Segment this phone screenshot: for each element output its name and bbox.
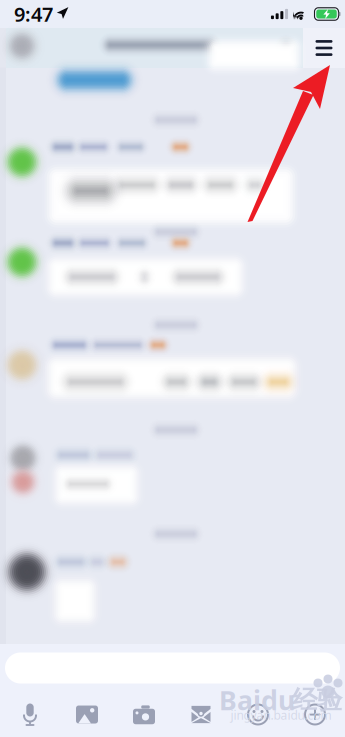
button[interactable]: Menu: [303, 28, 345, 68]
staticText: 经验: [292, 684, 342, 715]
button[interactable]: Voice message: [1, 692, 58, 737]
button[interactable]: More: [286, 692, 343, 737]
button[interactable]: Photos: [58, 692, 115, 737]
staticText: Baidu: [219, 682, 295, 718]
staticText: 9:47: [14, 1, 53, 27]
button[interactable]: Camera: [115, 692, 172, 737]
button[interactable]: Red packet: [172, 692, 229, 737]
button[interactable]: Emoji: [229, 692, 286, 737]
staticText: jingyan.baidu.com: [230, 707, 331, 723]
